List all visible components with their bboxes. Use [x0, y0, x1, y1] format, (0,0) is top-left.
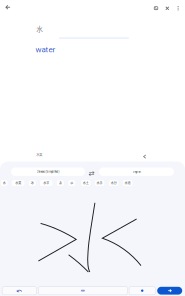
- staticText: 水平: [43, 181, 49, 185]
- staticText: 冰: [31, 181, 34, 185]
- staticText: English: [132, 170, 140, 173]
- staticText: 水果: [15, 181, 21, 185]
- button[interactable]: 氺: [68, 180, 75, 186]
- staticText: 水分: [111, 181, 117, 185]
- button[interactable]: Swap languages: [87, 170, 96, 178]
- button[interactable]: Chinese (Simplified): [11, 168, 85, 176]
- button[interactable]: 水: [1, 180, 7, 186]
- button[interactable]: 水果: [12, 180, 24, 186]
- staticText: 水: [3, 181, 6, 185]
- button[interactable]: 水果: [0, 0, 185, 296]
- staticText: 水手: [97, 181, 103, 185]
- button[interactable]: Enter: [157, 287, 182, 295]
- button[interactable]: 冰: [29, 180, 36, 186]
- button[interactable]: 水平: [40, 180, 52, 186]
- staticText: 水果: [36, 152, 42, 157]
- button[interactable]: 水池: [123, 180, 132, 186]
- button[interactable]: Punctuation: [129, 286, 155, 295]
- button[interactable]: 水土: [81, 180, 90, 186]
- button[interactable]: 水手: [95, 180, 104, 186]
- button[interactable]: 永: [57, 180, 64, 186]
- button[interactable]: Undo: [2, 286, 37, 295]
- button[interactable]: More options: [174, 2, 182, 14]
- button[interactable]: Keyboard: [151, 3, 161, 13]
- button[interactable]: Back: [2, 2, 14, 13]
- staticText: 氺: [70, 181, 73, 185]
- button[interactable]: 水分: [109, 180, 118, 186]
- staticText: 水池: [125, 181, 131, 185]
- staticText: 水土: [83, 181, 89, 185]
- button[interactable]: Clear text: [162, 3, 172, 13]
- button[interactable]: English: [99, 168, 174, 176]
- staticText: 水: [36, 24, 43, 34]
- button[interactable]: Space: [38, 286, 127, 295]
- staticText: water: [36, 45, 56, 54]
- staticText: Chinese (Simplified): [36, 170, 59, 173]
- staticText: 永: [59, 181, 62, 185]
